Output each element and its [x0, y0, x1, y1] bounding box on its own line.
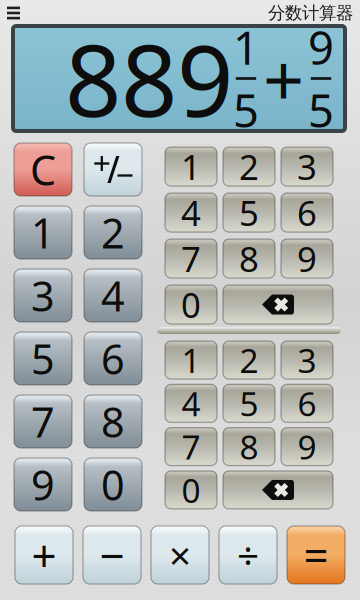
staticText: +: [263, 31, 304, 126]
staticText: 1: [181, 338, 200, 382]
staticText: 7: [181, 235, 201, 281]
button[interactable]: 8: [84, 395, 142, 448]
button[interactable]: 4: [84, 269, 142, 322]
staticText: 889: [65, 13, 233, 144]
staticText: 1: [31, 205, 55, 260]
staticText: 7: [31, 394, 55, 449]
button[interactable]: 0: [165, 471, 217, 509]
button[interactable]: ×: [151, 526, 209, 584]
button[interactable]: 7: [14, 395, 72, 448]
button[interactable]: 5: [223, 384, 275, 422]
staticText: 9: [297, 235, 317, 281]
button[interactable]: −: [83, 526, 141, 584]
staticText: 1: [181, 143, 201, 189]
button[interactable]: 6: [281, 193, 333, 232]
staticText: 4: [181, 381, 200, 425]
button[interactable]: 4: [165, 193, 217, 232]
button[interactable]: 8: [223, 428, 275, 466]
staticText: 6: [297, 189, 317, 235]
staticText: 5: [239, 189, 259, 235]
button[interactable]: 9: [281, 428, 333, 466]
staticText: ×: [169, 529, 191, 581]
staticText: 2: [101, 205, 125, 260]
button[interactable]: 6: [281, 384, 333, 422]
staticText: 8: [239, 235, 259, 281]
button[interactable]: 7: [165, 428, 217, 466]
staticText: 8: [101, 394, 125, 449]
button[interactable]: =: [287, 526, 345, 584]
staticText: 5: [233, 80, 259, 140]
button[interactable]: 1: [165, 341, 217, 379]
staticText: 4: [101, 268, 125, 323]
staticText: 5: [308, 80, 334, 140]
button[interactable]: 2: [223, 341, 275, 379]
staticText: 4: [181, 189, 201, 235]
button[interactable]: 1: [14, 206, 72, 259]
button[interactable]: C: [14, 143, 72, 196]
staticText: 2: [239, 143, 259, 189]
staticText: 8: [239, 424, 258, 469]
button[interactable]: Backspace: [223, 471, 333, 509]
button[interactable]: 3: [14, 269, 72, 322]
staticText: 9: [31, 457, 55, 512]
staticText: 0: [181, 281, 201, 327]
button[interactable]: 0: [165, 285, 217, 324]
button[interactable]: Menu: [7, 3, 21, 23]
button[interactable]: 9: [281, 239, 333, 278]
button[interactable]: 1: [165, 147, 217, 186]
staticText: 2: [239, 338, 258, 382]
button[interactable]: ÷: [219, 526, 277, 584]
staticText: ÷: [237, 529, 259, 581]
button[interactable]: 9: [14, 458, 72, 511]
staticText: 5: [239, 381, 258, 425]
staticText: C: [30, 142, 56, 197]
button[interactable]: 3: [281, 147, 333, 186]
staticText: 9: [308, 17, 334, 77]
staticText: −: [99, 526, 124, 584]
button[interactable]: Plus minus: [84, 143, 142, 196]
button[interactable]: 5: [223, 193, 275, 232]
button[interactable]: 4: [165, 384, 217, 422]
button[interactable]: 3: [281, 341, 333, 379]
button[interactable]: 6: [84, 332, 142, 385]
staticText: 3: [297, 338, 316, 382]
staticText: =: [303, 526, 328, 584]
staticText: 9: [297, 424, 316, 469]
staticText: 3: [297, 143, 317, 189]
button[interactable]: 2: [223, 147, 275, 186]
staticText: 6: [101, 331, 125, 386]
staticText: 分数计算器: [268, 2, 353, 24]
staticText: 6: [297, 381, 316, 425]
staticText: 1: [233, 17, 259, 77]
staticText: +: [31, 526, 56, 584]
staticText: 0: [181, 468, 200, 512]
button[interactable]: 8: [223, 239, 275, 278]
button[interactable]: +: [15, 526, 73, 584]
button[interactable]: Backspace: [223, 285, 333, 324]
staticText: 7: [181, 424, 200, 469]
button[interactable]: 7: [165, 239, 217, 278]
button[interactable]: 2: [84, 206, 142, 259]
staticText: 5: [31, 331, 55, 386]
button[interactable]: 0: [84, 458, 142, 511]
staticText: 0: [101, 457, 125, 512]
button[interactable]: 5: [14, 332, 72, 385]
staticText: 3: [31, 268, 55, 323]
